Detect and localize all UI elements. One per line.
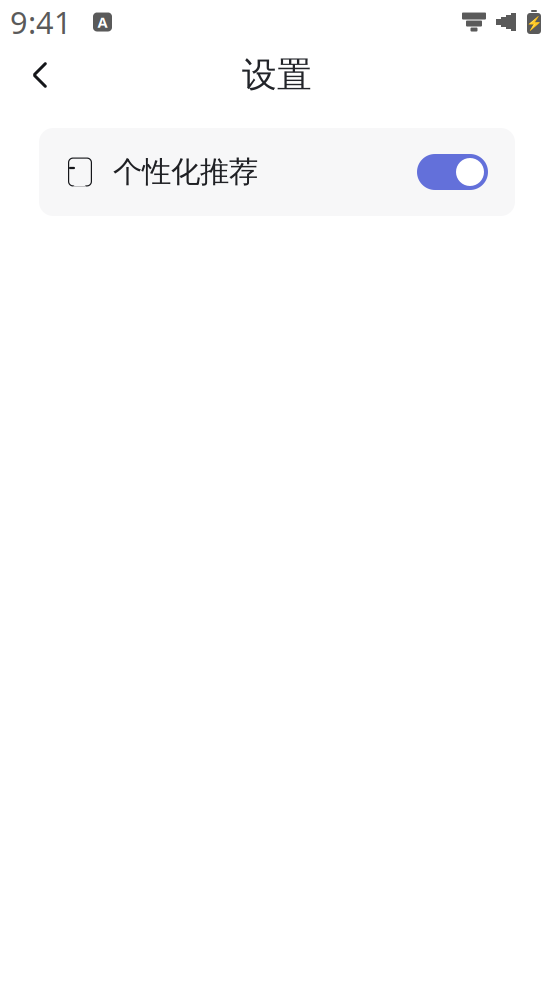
staticText: 设置	[242, 54, 312, 96]
button[interactable]: 返回	[14, 49, 66, 101]
button[interactable]: 个性化推荐	[39, 128, 515, 216]
staticText: ⚡	[525, 16, 542, 31]
staticText: A	[97, 12, 107, 32]
staticText: 个性化推荐	[113, 154, 258, 190]
staticText: 9:41	[10, 2, 72, 42]
button[interactable]: 个性化推荐开关，已开启	[417, 154, 488, 190]
